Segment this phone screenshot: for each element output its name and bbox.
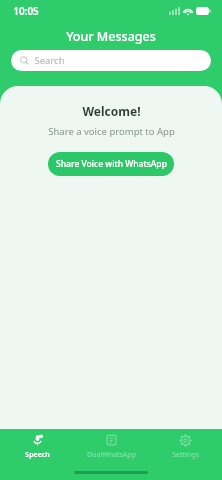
staticText: Share Voice with WhatsApp <box>56 158 167 170</box>
button[interactable]: Search <box>11 50 211 71</box>
staticText: Search <box>34 54 65 67</box>
staticText: Speech <box>25 450 50 460</box>
staticText: Share a voice prompt to App <box>48 125 175 138</box>
staticText: Settings <box>172 450 199 460</box>
button[interactable]: Share Voice with WhatsApp <box>48 152 174 176</box>
staticText: 10:05 <box>13 4 39 18</box>
button[interactable]: Settings <box>148 429 222 465</box>
button[interactable]: Speech <box>0 429 74 465</box>
staticText: DualWhatsApp <box>87 450 136 460</box>
staticText: Your Messages <box>66 28 156 45</box>
button[interactable]: DualWhatsApp <box>74 429 148 465</box>
staticText: Welcome! <box>82 103 141 119</box>
